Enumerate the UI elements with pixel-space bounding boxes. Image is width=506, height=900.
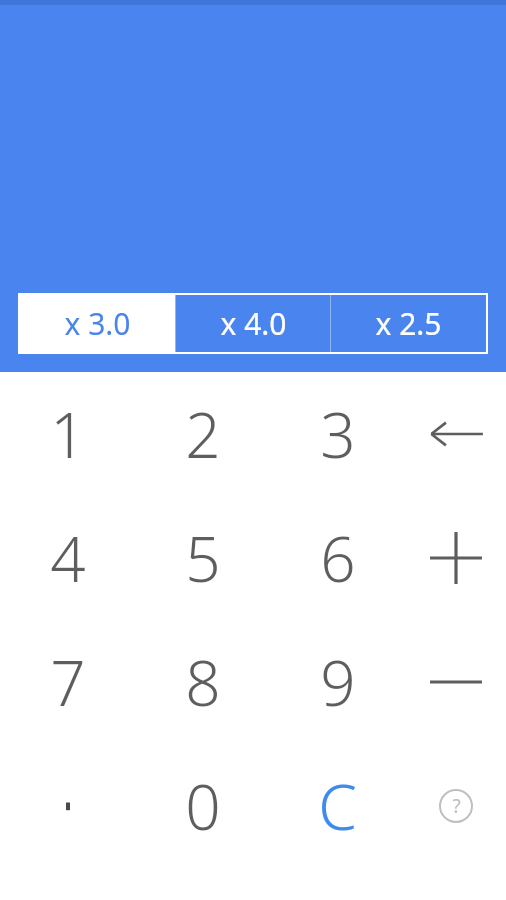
button[interactable]: Minus xyxy=(405,620,506,744)
staticText: 2 xyxy=(185,392,221,476)
staticText: ? xyxy=(452,793,461,819)
button[interactable]: x 2.5 xyxy=(331,295,486,352)
button[interactable]: 5 xyxy=(135,496,270,620)
staticText: 7 xyxy=(50,640,86,724)
button[interactable]: C xyxy=(270,744,405,868)
button[interactable]: 1 xyxy=(0,372,135,496)
button[interactable]: 0 xyxy=(135,744,270,868)
staticText: 8 xyxy=(185,640,221,724)
button[interactable]: 3 xyxy=(270,372,405,496)
staticText: x 2.5 xyxy=(375,303,442,344)
staticText: 3 xyxy=(320,392,356,476)
staticText: C xyxy=(318,764,357,848)
button[interactable]: Help xyxy=(405,744,506,868)
button[interactable]: 8 xyxy=(135,620,270,744)
button[interactable]: 9 xyxy=(270,620,405,744)
staticText: x 3.0 xyxy=(64,303,131,344)
button[interactable]: Decimal separator xyxy=(0,744,135,868)
button[interactable]: x 4.0 xyxy=(176,295,330,352)
button[interactable]: 2 xyxy=(135,372,270,496)
staticText: 6 xyxy=(320,516,356,600)
button[interactable]: Plus xyxy=(405,496,506,620)
staticText: 1 xyxy=(50,392,86,476)
staticText: 4 xyxy=(50,516,86,600)
staticText: 5 xyxy=(185,516,221,600)
button[interactable]: x 3.0 xyxy=(20,295,175,352)
button[interactable]: 6 xyxy=(270,496,405,620)
staticText: 9 xyxy=(320,640,356,724)
button[interactable]: 7 xyxy=(0,620,135,744)
button[interactable]: Backspace xyxy=(405,372,506,496)
button[interactable]: 4 xyxy=(0,496,135,620)
staticText: x 4.0 xyxy=(220,303,287,344)
staticText: 0 xyxy=(185,764,221,848)
